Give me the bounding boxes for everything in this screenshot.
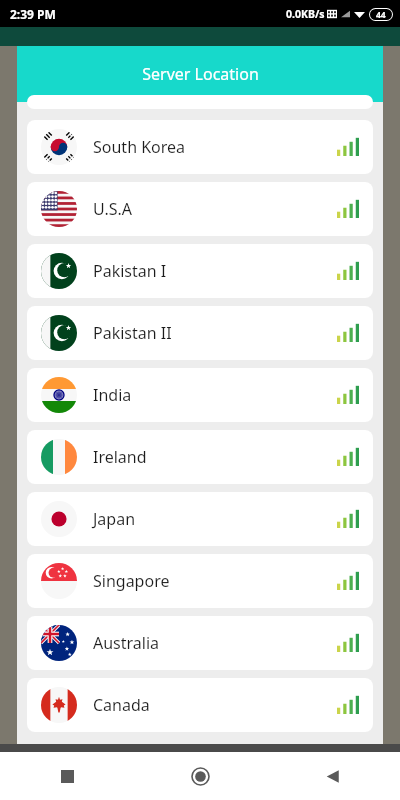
staticText: Ireland [93, 446, 147, 468]
staticText: South Korea [93, 136, 186, 158]
staticText: 0.0KB/s [286, 7, 325, 21]
button[interactable]: Canada [27, 678, 373, 732]
staticText: Pakistan II [93, 322, 172, 344]
staticText: Canada [93, 694, 150, 716]
button[interactable]: Australia [27, 616, 373, 670]
staticText: 2:39 PM [10, 6, 56, 22]
button[interactable]: Japan [27, 492, 373, 546]
staticText: Australia [93, 632, 160, 654]
button[interactable]: U.S.A [27, 182, 373, 236]
button[interactable]: Home [134, 752, 267, 800]
button[interactable]: Singapore [27, 554, 373, 608]
button[interactable]: India [27, 368, 373, 422]
staticText: Singapore [93, 570, 170, 592]
button[interactable]: Back [267, 752, 400, 800]
staticText: Japan [93, 508, 136, 530]
staticText: Server Location [142, 63, 259, 85]
button[interactable]: Ireland [27, 430, 373, 484]
staticText: Pakistan I [93, 260, 167, 282]
button[interactable]: Pakistan II [27, 306, 373, 360]
staticText: 44 [376, 9, 386, 20]
button[interactable]: South Korea [27, 120, 373, 174]
staticText: U.S.A [93, 198, 132, 220]
button[interactable]: Recents [0, 752, 134, 800]
button[interactable]: Pakistan I [27, 244, 373, 298]
staticText: India [93, 384, 132, 406]
